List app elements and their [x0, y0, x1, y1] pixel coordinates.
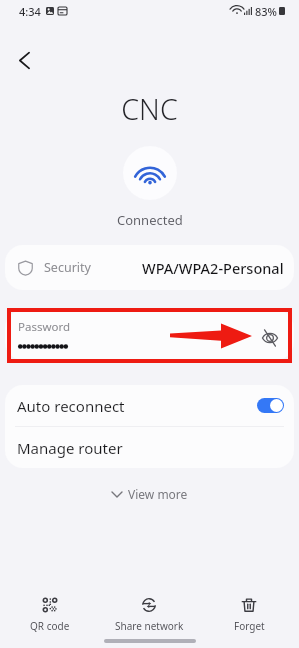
staticText: Security — [44, 259, 91, 276]
button[interactable]: Password — [5, 310, 294, 360]
staticText: CNC — [0, 90, 299, 129]
button[interactable]: Security — [5, 245, 294, 290]
staticText: View more — [128, 486, 188, 502]
button[interactable]: Manage router — [5, 427, 294, 468]
button[interactable]: Auto reconnect toggle — [257, 398, 284, 413]
staticText: Manage router — [17, 438, 123, 458]
button[interactable]: QR code — [0, 598, 99, 633]
button[interactable]: View more — [106, 483, 194, 505]
staticText: Auto reconnect — [17, 396, 125, 416]
button[interactable]: Show password — [257, 325, 283, 351]
staticText: 4:34 — [19, 4, 41, 19]
staticText: QR code — [30, 619, 70, 633]
staticText: Password — [18, 319, 71, 335]
staticText: WPA/WPA2-Personal — [142, 258, 284, 278]
staticText: Connected — [117, 211, 183, 229]
staticText: Share network — [115, 619, 184, 633]
button[interactable]: Back — [10, 46, 39, 75]
button[interactable]: Forget — [199, 598, 299, 633]
staticText: Forget — [234, 619, 265, 633]
staticText: 83% — [255, 4, 277, 19]
button[interactable]: Share network — [99, 598, 199, 633]
button[interactable]: Auto reconnect — [5, 385, 294, 426]
